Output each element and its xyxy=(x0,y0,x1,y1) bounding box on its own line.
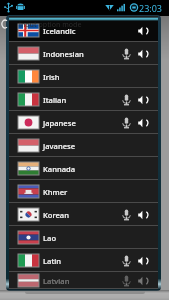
button[interactable]: Voice input xyxy=(119,249,133,272)
staticText: Icelandic xyxy=(43,26,76,36)
button[interactable]: Italian xyxy=(9,88,158,111)
staticText: Latin xyxy=(43,256,62,266)
staticText: input option mode xyxy=(19,20,82,30)
button[interactable]: Khmer xyxy=(9,180,158,203)
button[interactable]: Lao xyxy=(9,226,158,249)
button[interactable]: Listen xyxy=(136,249,150,272)
staticText: Khmer xyxy=(43,187,68,197)
button[interactable]: Latin xyxy=(9,249,158,272)
button[interactable]: Icelandic xyxy=(9,19,158,42)
staticText: Japanese xyxy=(43,118,76,128)
button[interactable]: Listen xyxy=(136,88,150,111)
staticText: Kannada xyxy=(43,164,76,174)
staticText: Lao xyxy=(43,233,57,243)
staticText: 23:03 xyxy=(139,2,163,14)
button[interactable]: Javanese xyxy=(9,134,158,157)
button[interactable]: Listen xyxy=(136,19,150,42)
staticText: Latvian xyxy=(43,276,70,286)
button[interactable]: Listen xyxy=(136,111,150,134)
button[interactable]: Listen xyxy=(136,203,150,226)
button[interactable]: Japanese xyxy=(9,111,158,134)
button[interactable]: Voice input xyxy=(119,203,133,226)
button[interactable]: Listen xyxy=(136,42,150,65)
button[interactable]: Voice input xyxy=(119,88,133,111)
button[interactable]: Irish xyxy=(9,65,158,88)
button[interactable]: Voice input xyxy=(119,42,133,65)
button[interactable]: Korean xyxy=(9,203,158,226)
button[interactable]: Latvian xyxy=(9,272,158,289)
staticText: Irish xyxy=(43,72,60,82)
button[interactable]: Indonesian xyxy=(9,42,158,65)
button[interactable]: Voice input xyxy=(119,272,133,289)
staticText: Italian xyxy=(43,95,67,105)
staticText: Javanese xyxy=(43,141,76,151)
button[interactable]: Listen xyxy=(136,272,150,289)
staticText: Korean xyxy=(43,210,69,220)
button[interactable]: Voice input xyxy=(119,111,133,134)
staticText: Indonesian xyxy=(43,49,84,59)
button[interactable]: Kannada xyxy=(9,157,158,180)
